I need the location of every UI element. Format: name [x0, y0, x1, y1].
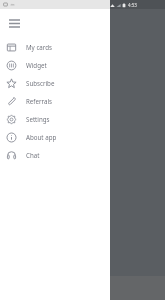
button[interactable]: Referrals — [0, 92, 110, 110]
button[interactable]: About app — [0, 128, 110, 146]
button[interactable]: Widget — [0, 56, 110, 74]
staticText: My cards — [26, 43, 53, 51]
staticText: 4:53 — [128, 2, 137, 8]
staticText: Referrals — [26, 97, 52, 105]
button[interactable]: Open navigation menu — [5, 14, 23, 32]
staticText: Chat — [26, 151, 40, 159]
button[interactable]: Chat — [0, 146, 110, 164]
staticText: Settings — [26, 115, 50, 123]
button[interactable]: Subscribe — [0, 74, 110, 92]
staticText: About app — [26, 133, 57, 141]
button[interactable]: My cards — [0, 38, 110, 56]
button[interactable]: Settings — [0, 110, 110, 128]
staticText: Subscribe — [26, 79, 55, 87]
staticText: Widget — [26, 61, 47, 69]
